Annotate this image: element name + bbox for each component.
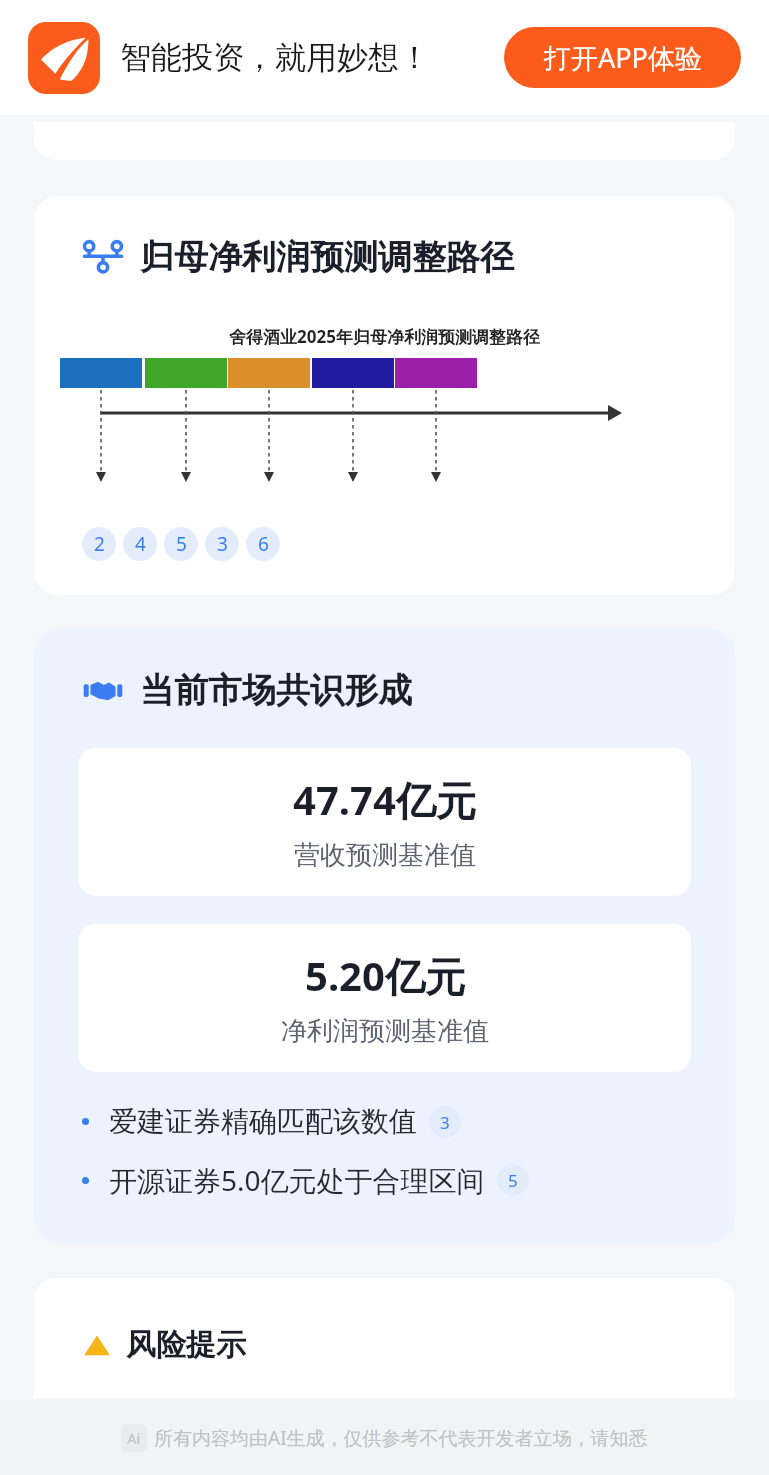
button[interactable]: 爱建证券精确匹配该数值 <box>82 1104 735 1139</box>
staticText: 5 <box>508 1169 518 1192</box>
staticText: 舍得酒业2025年归母净利润预测调整路径 <box>34 325 735 348</box>
button[interactable]: 当前市场共识形成 <box>34 629 735 1243</box>
staticText: 3 <box>217 531 228 557</box>
button[interactable]: 2 <box>82 527 116 561</box>
staticText: 6 <box>258 531 269 557</box>
button[interactable]: 3 <box>205 527 239 561</box>
staticText: 5 <box>176 531 187 557</box>
staticText: 归母净利润预测调整路径 <box>140 236 514 279</box>
staticText: 3 <box>440 1111 450 1134</box>
button[interactable]: 归母净利润预测调整路径 <box>34 196 735 595</box>
button[interactable]: 47.74亿元 <box>78 748 691 896</box>
staticText: 4 <box>135 531 146 557</box>
button[interactable]: 5 <box>164 527 198 561</box>
staticText: 智能投资，就用妙想！ <box>120 38 430 77</box>
button[interactable]: 应用图标 <box>28 22 100 94</box>
button[interactable]: 打开APP体验 <box>504 27 741 88</box>
staticText: 所有内容均由AI生成，仅供参考不代表开发者立场，请知悉 <box>154 1425 648 1451</box>
button[interactable]: 4 <box>123 527 157 561</box>
staticText: 开源证券5.0亿元处于合理区间 <box>109 1161 485 1199</box>
staticText: 5.20亿元 <box>305 948 465 1003</box>
staticText: 净利润预测基准值 <box>281 1015 489 1048</box>
staticText: 47.74亿元 <box>293 772 476 827</box>
staticText: 爱建证券精确匹配该数值 <box>109 1104 417 1139</box>
staticText: 打开APP体验 <box>544 39 702 76</box>
staticText: 当前市场共识形成 <box>140 669 412 712</box>
button[interactable]: 6 <box>246 527 280 561</box>
staticText: 营收预测基准值 <box>294 839 476 872</box>
button[interactable]: 5.20亿元 <box>78 924 691 1072</box>
staticText: 风险提示 <box>126 1326 246 1364</box>
staticText: Ai <box>127 1428 141 1448</box>
staticText: 2 <box>94 531 105 557</box>
button[interactable]: 开源证券5.0亿元处于合理区间 <box>82 1161 735 1199</box>
